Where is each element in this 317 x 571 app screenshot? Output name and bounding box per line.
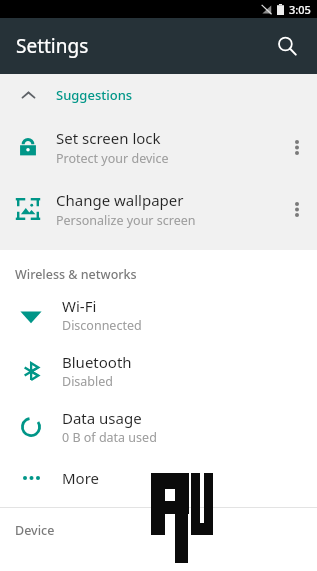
staticText: Wi-Fi [62,296,97,316]
button[interactable]: Change wallpaper [0,178,317,240]
button[interactable]: More [0,455,317,501]
button[interactable]: Suggestions [0,74,317,116]
staticText: Personalize your screen [56,212,196,229]
staticText: Bluetooth [62,352,132,372]
staticText: Data usage [62,408,142,428]
staticText: Disconnected [62,317,142,334]
staticText: 0 B of data used [62,429,157,446]
button[interactable]: More options [277,116,317,178]
button[interactable]: Data usage [0,399,317,455]
staticText: Set screen lock [56,128,161,148]
staticText: Suggestions [56,86,133,104]
staticText: Disabled [62,373,114,390]
staticText: More [62,468,100,488]
button[interactable]: Search [265,24,309,68]
button[interactable]: Wi-Fi [0,287,317,343]
button[interactable]: Set screen lock [0,116,317,178]
staticText: Change wallpaper [56,190,184,210]
button[interactable]: More options [277,178,317,240]
button[interactable]: Bluetooth [0,343,317,399]
staticText: Wireless & networks [15,266,137,283]
staticText: 3:05 [289,2,311,17]
staticText: Settings [16,33,89,59]
staticText: Protect your device [56,150,169,167]
staticText: Device [15,522,55,539]
